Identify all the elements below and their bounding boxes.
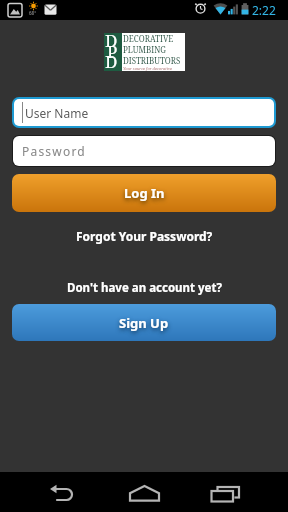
staticText: Don't have an account yet?: [67, 280, 222, 296]
staticText: DECORATIVE: [123, 33, 174, 44]
staticText: P: [107, 40, 118, 63]
button[interactable]: [0, 472, 96, 512]
staticText: Log In: [124, 184, 165, 202]
button[interactable]: Log In: [12, 174, 276, 212]
staticText: Forgot Your Password?: [76, 228, 213, 244]
staticText: D: [105, 50, 118, 71]
staticText: Password: [22, 143, 86, 159]
button[interactable]: Sign Up: [12, 304, 276, 341]
button[interactable]: [96, 472, 192, 512]
staticText: User Name: [25, 105, 89, 121]
staticText: 2:22: [252, 2, 276, 18]
staticText: Sign Up: [119, 314, 169, 332]
staticText: D: [105, 33, 118, 52]
button[interactable]: Password: [13, 136, 275, 166]
button[interactable]: Forgot Your Password?: [0, 227, 288, 244]
staticText: PLUMBING: [123, 44, 167, 55]
button[interactable]: [192, 472, 288, 512]
button[interactable]: User Name: [14, 99, 274, 126]
staticText: DISTRIBUTORS: [123, 55, 181, 66]
staticText: Your source for decorative plumbing: [123, 66, 185, 71]
staticText: 68°: [29, 10, 37, 16]
